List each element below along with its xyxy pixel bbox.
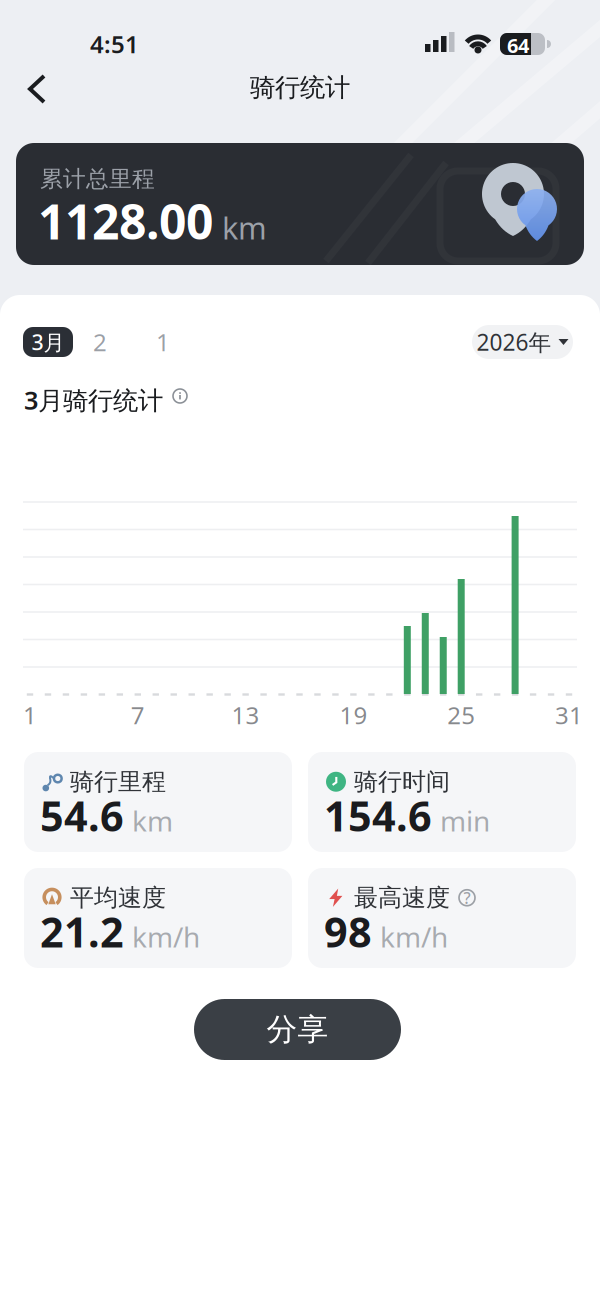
staticText: 98 <box>324 904 372 959</box>
staticText: 64 <box>507 32 529 59</box>
staticText: 分享 <box>266 1011 328 1048</box>
button[interactable]: 2026年 <box>472 325 573 359</box>
button[interactable]: 分享 <box>194 999 401 1060</box>
staticText: 13 <box>232 699 260 731</box>
staticText: 31 <box>555 699 583 731</box>
staticText: km/h <box>380 918 448 955</box>
staticText: 最高速度 <box>354 883 450 912</box>
staticText: 累计总里程 <box>40 165 155 193</box>
staticText: 2 <box>93 326 107 358</box>
staticText: min <box>440 802 490 839</box>
staticText: 骑行统计 <box>250 72 350 103</box>
staticText: 54.6 <box>40 788 124 843</box>
staticText: 21.2 <box>40 904 124 959</box>
staticText: 25 <box>447 699 475 731</box>
staticText: 7 <box>131 699 145 731</box>
staticText: 平均速度 <box>70 883 166 912</box>
staticText: 2026年 <box>476 327 551 357</box>
button[interactable]: ? <box>458 889 476 907</box>
staticText: 154.6 <box>324 788 432 843</box>
staticText: km <box>222 207 267 248</box>
staticText: 19 <box>339 699 367 731</box>
staticText: 1 <box>23 699 37 731</box>
button[interactable]: 1 <box>148 327 178 357</box>
staticText: ? <box>463 887 470 908</box>
staticText: 3月骑行统计 <box>24 383 163 417</box>
staticText: 4:51 <box>90 28 139 60</box>
staticText: 骑行里程 <box>70 767 166 796</box>
button[interactable] <box>28 73 48 105</box>
button[interactable]: 3月 <box>23 327 73 357</box>
staticText: 1 <box>156 326 170 358</box>
button[interactable]: 2 <box>85 327 115 357</box>
staticText: 骑行时间 <box>354 767 450 796</box>
staticText: 3月 <box>31 328 64 356</box>
staticText: km/h <box>132 918 200 955</box>
button[interactable] <box>172 388 188 404</box>
staticText: km <box>132 802 173 839</box>
staticText: 1128.00 <box>38 189 213 253</box>
